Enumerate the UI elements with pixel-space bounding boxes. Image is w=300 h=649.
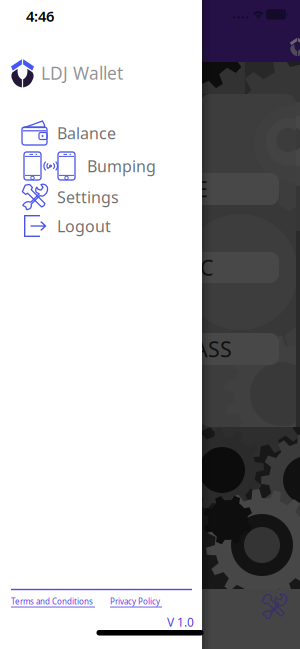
staticText: Logout xyxy=(57,215,111,237)
button[interactable]: Balance xyxy=(0,118,190,148)
staticText: 4:46 xyxy=(26,6,54,26)
button[interactable]: Privacy Policy xyxy=(110,596,162,607)
button[interactable]: Bumping xyxy=(0,151,190,181)
staticText: SHOW PASS xyxy=(112,335,232,363)
staticText: Balance xyxy=(57,122,116,144)
staticText: V 1.0 xyxy=(167,614,194,630)
button[interactable]: CHECK BALANCE xyxy=(21,173,279,205)
staticText: Privacy Policy xyxy=(110,596,160,607)
staticText: CHECK BALANCE xyxy=(41,175,208,203)
button[interactable]: Settings xyxy=(262,594,287,619)
staticText: LDJ Wallet xyxy=(41,61,123,84)
button[interactable]: Settings xyxy=(0,184,190,210)
staticText: Settings xyxy=(57,186,119,208)
button[interactable]: Logout xyxy=(0,214,190,238)
staticText: Terms and Conditions xyxy=(11,596,93,607)
button[interactable]: SHOW PASS xyxy=(21,333,279,365)
button[interactable]: NFC xyxy=(21,252,279,283)
staticText: Bumping xyxy=(87,155,156,177)
staticText: NFC xyxy=(173,253,213,282)
button[interactable]: Terms and Conditions xyxy=(11,596,95,607)
